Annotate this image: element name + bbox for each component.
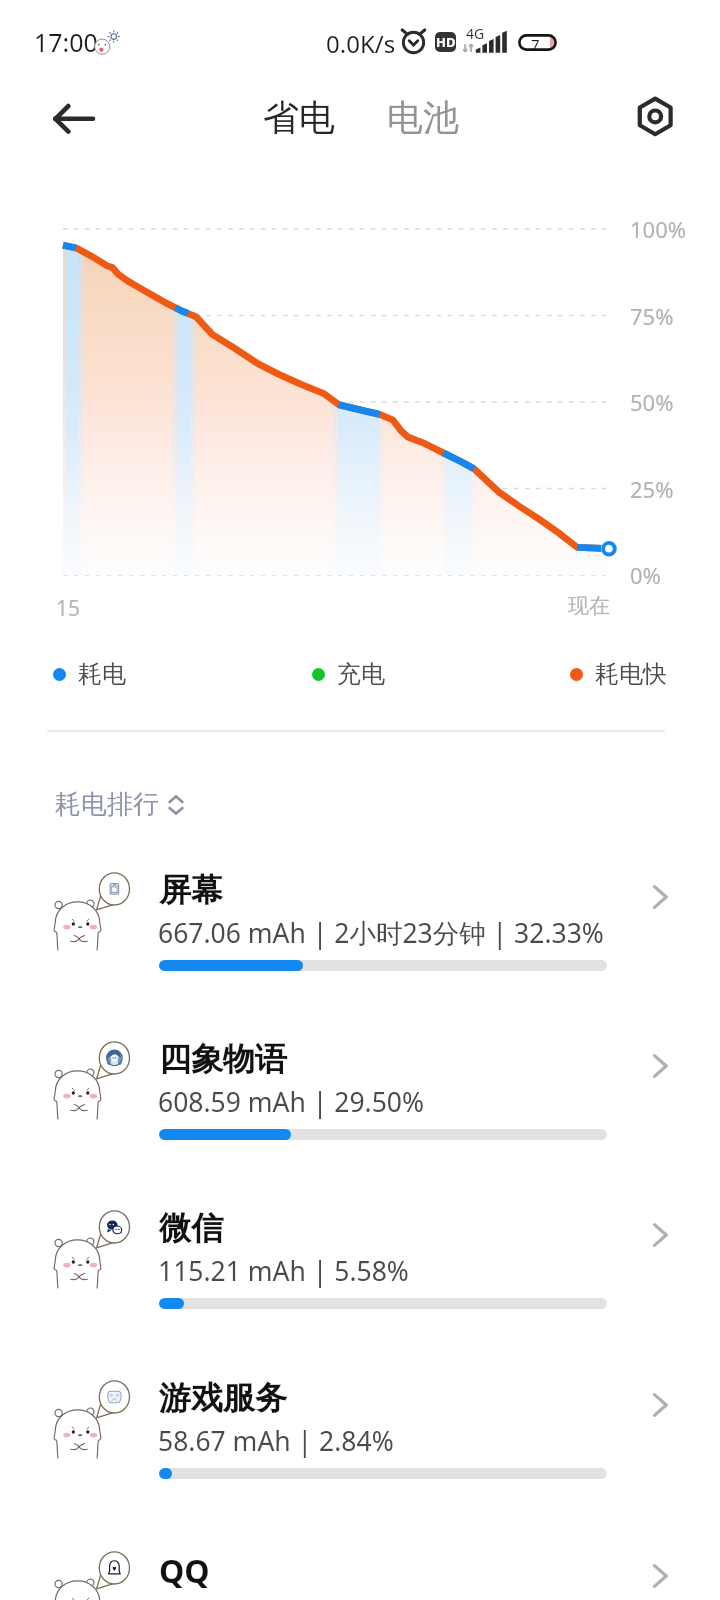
staticText: 充电 bbox=[337, 659, 385, 689]
staticText: 游戏服务 bbox=[159, 1378, 287, 1418]
staticText: 耗电排行 bbox=[55, 788, 159, 821]
staticText: 耗电 bbox=[78, 659, 126, 689]
button[interactable]: 充电 bbox=[312, 659, 385, 689]
staticText: 58.67 mAh | 2.84% bbox=[158, 1423, 394, 1459]
staticText: 7 bbox=[531, 34, 540, 51]
button[interactable]: 耗电 bbox=[53, 659, 126, 689]
staticText: 屏幕 bbox=[159, 870, 223, 910]
button[interactable]: Back bbox=[46, 93, 104, 151]
staticText: 100% bbox=[630, 214, 687, 244]
staticText: QQ bbox=[159, 1549, 210, 1593]
staticText: 115.21 mAh | 5.58% bbox=[158, 1253, 409, 1289]
button[interactable]: 游戏服务 bbox=[0, 1314, 720, 1483]
button[interactable]: 耗电排行 bbox=[49, 783, 191, 826]
staticText: 四象物语 bbox=[159, 1039, 287, 1079]
staticText: 现在 bbox=[568, 593, 610, 619]
staticText: 75% bbox=[630, 301, 674, 331]
button[interactable]: QQ bbox=[0, 1485, 720, 1600]
button[interactable]: 四象物语 bbox=[0, 975, 720, 1144]
staticText: 省电 bbox=[263, 95, 335, 140]
button[interactable]: Settings bbox=[627, 88, 683, 144]
button[interactable]: 省电 bbox=[255, 89, 343, 146]
staticText: 电池 bbox=[387, 95, 459, 140]
staticText: 微信 bbox=[159, 1208, 223, 1248]
staticText: 耗电快 bbox=[595, 659, 667, 689]
staticText: 0.0K/s bbox=[326, 27, 396, 60]
staticText: HD bbox=[436, 33, 456, 51]
staticText: 4G bbox=[466, 24, 485, 43]
staticText: 608.59 mAh | 29.50% bbox=[158, 1084, 425, 1120]
staticText: 15 bbox=[56, 594, 81, 623]
staticText: 667.06 mAh | 2小时23分钟 | 32.33% bbox=[158, 915, 604, 951]
staticText: 25% bbox=[630, 474, 674, 504]
staticText: 50% bbox=[630, 387, 674, 417]
button[interactable]: 耗电快 bbox=[570, 659, 667, 689]
button[interactable]: 屏幕 bbox=[0, 806, 720, 975]
button[interactable]: 微信 bbox=[0, 1144, 720, 1313]
button[interactable]: 电池 bbox=[379, 89, 467, 146]
staticText: 0% bbox=[630, 560, 661, 590]
staticText: 17:00 bbox=[34, 25, 98, 59]
